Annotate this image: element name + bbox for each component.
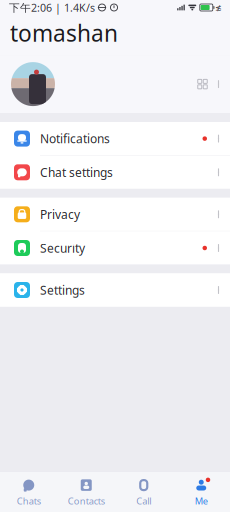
staticText: Security <box>40 240 85 256</box>
staticText: Chat settings <box>40 164 113 180</box>
button[interactable]: Security <box>0 231 230 264</box>
staticText: Call <box>136 495 151 507</box>
staticText: Contacts <box>68 495 105 507</box>
staticText: Me <box>195 495 208 507</box>
staticText: Notifications <box>40 131 110 146</box>
button[interactable]: Contacts <box>57 476 115 509</box>
button[interactable]: Chats <box>0 476 57 509</box>
button[interactable]: Me <box>172 476 230 509</box>
staticText: ≴ <box>215 3 222 12</box>
button[interactable]: Call <box>115 476 172 509</box>
button[interactable]: Notifications <box>0 122 230 156</box>
staticText: Settings <box>40 282 85 298</box>
button[interactable]: Settings <box>0 273 230 306</box>
staticText: tomashan <box>10 18 118 48</box>
staticText: Chats <box>17 495 41 507</box>
button[interactable]: Chat settings <box>0 156 230 189</box>
staticText: 下午2:06 | 1.4K/s <box>9 0 95 15</box>
staticText: Privacy <box>40 206 80 222</box>
button[interactable] <box>0 55 230 113</box>
button[interactable]: Privacy <box>0 198 230 231</box>
